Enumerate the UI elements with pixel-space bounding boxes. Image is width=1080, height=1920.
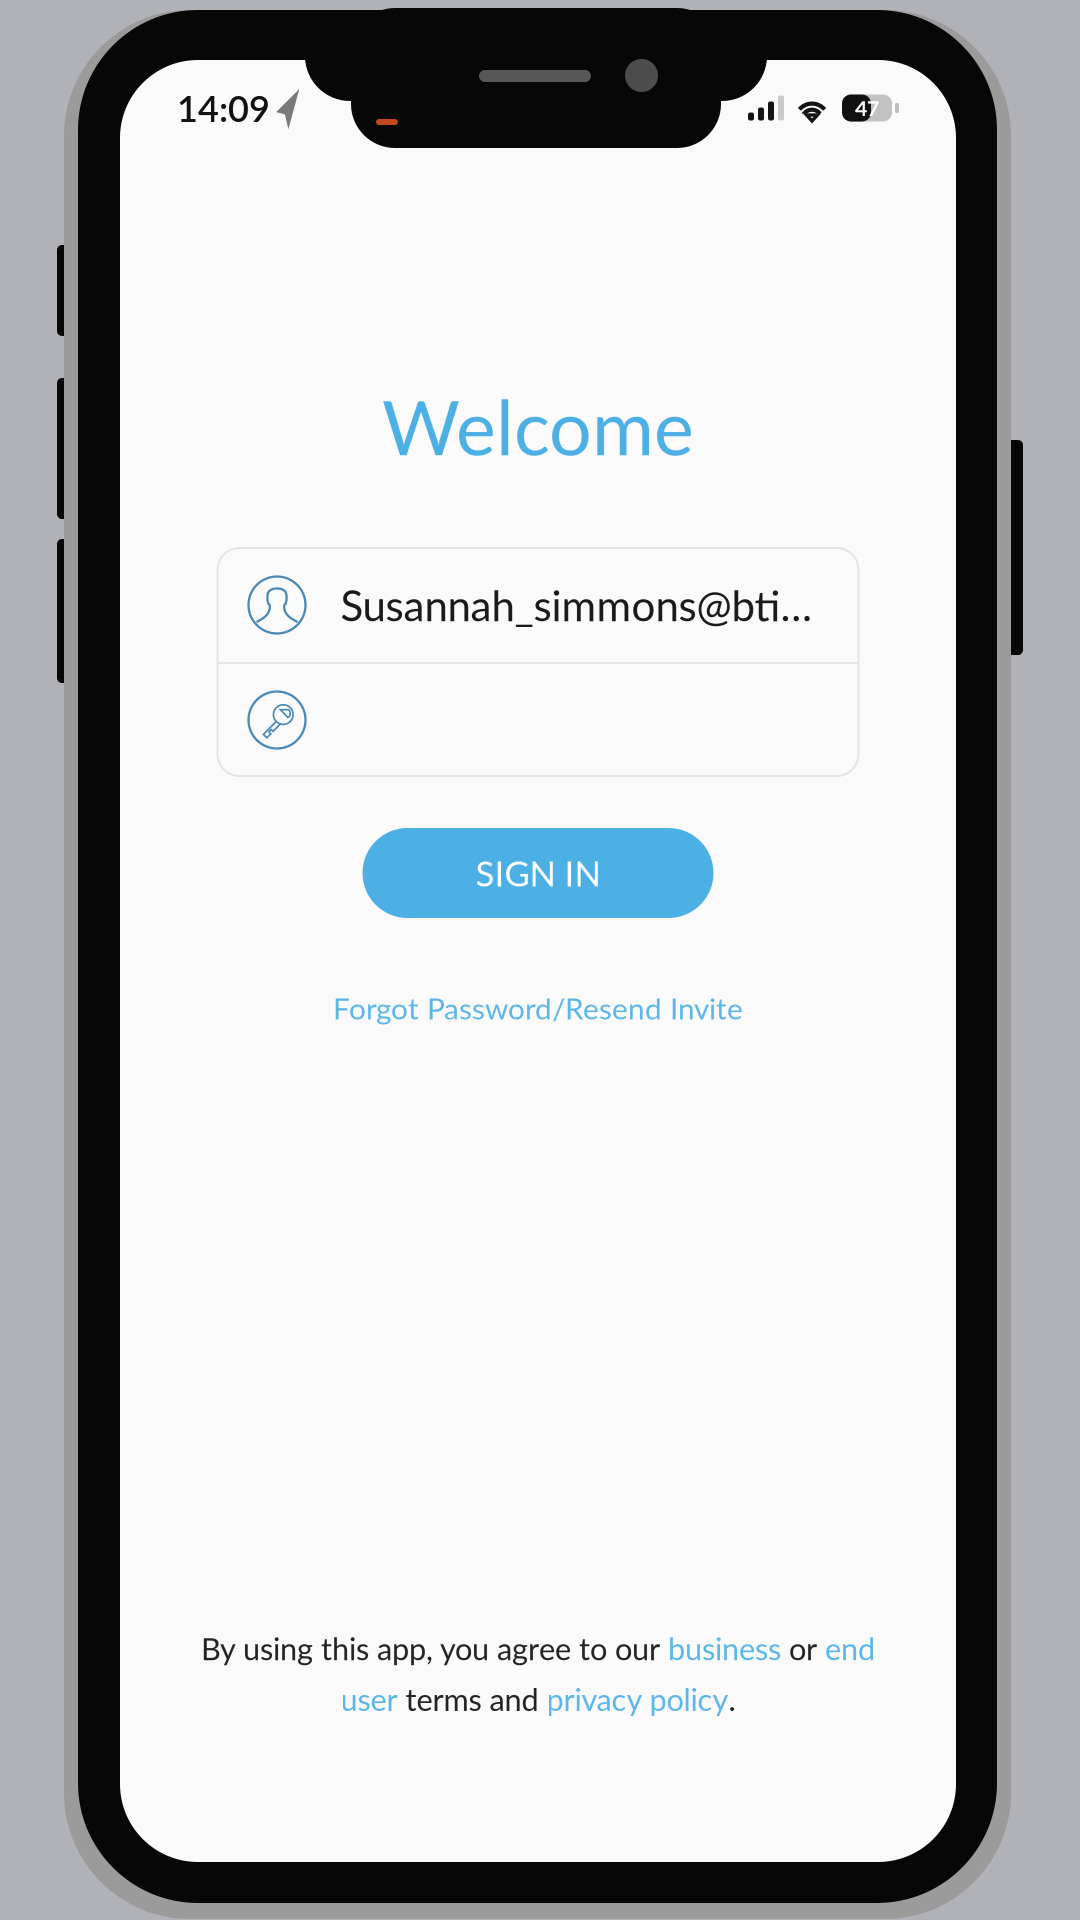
staticText: privacy policy [546, 1681, 728, 1718]
button[interactable]: Forgot Password/Resend Invite [333, 985, 743, 1031]
staticText: Welcome [382, 381, 694, 471]
staticText: user [340, 1681, 397, 1718]
staticText: end [825, 1630, 875, 1667]
button[interactable]: Password [217, 664, 858, 776]
staticText: terms and [397, 1681, 546, 1718]
staticText: business [668, 1630, 781, 1667]
staticText: By using this app, you agree to our [201, 1630, 668, 1667]
button[interactable]: business [668, 1630, 781, 1667]
button[interactable]: end [825, 1630, 875, 1667]
button[interactable]: SIGN IN [362, 828, 713, 918]
staticText: Forgot Password/Resend Invite [333, 990, 743, 1026]
staticText: 47 [855, 95, 879, 121]
button[interactable]: Susannah_simmons@bti… [217, 548, 858, 662]
button[interactable]: privacy policy [546, 1681, 728, 1718]
staticText: Susannah_simmons@bti… [340, 580, 812, 630]
button[interactable]: user [340, 1681, 397, 1718]
staticText: . [728, 1681, 735, 1718]
staticText: or [781, 1630, 825, 1667]
staticText: 14:09 [177, 86, 270, 130]
staticText: SIGN IN [475, 852, 600, 894]
